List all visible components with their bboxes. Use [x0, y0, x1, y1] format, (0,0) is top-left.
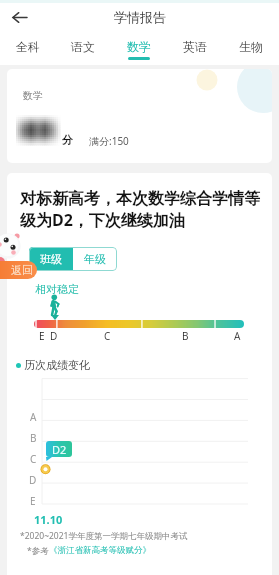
staticText: 分: [62, 133, 73, 147]
staticText: A: [30, 410, 37, 424]
staticText: 年级: [84, 252, 106, 266]
staticText: 相对稳定: [35, 282, 79, 296]
staticText: 对标新高考，本次数学综合学情等级为D2，下次继续加油: [20, 189, 267, 231]
button[interactable]: 生物: [223, 31, 279, 65]
staticText: 数学: [127, 39, 151, 54]
button[interactable]: 语文: [55, 31, 111, 65]
staticText: B: [182, 329, 189, 343]
staticText: 数学: [23, 89, 43, 102]
staticText: D: [29, 473, 37, 487]
staticText: *参考: [27, 545, 49, 557]
button[interactable]: Back: [8, 6, 30, 28]
button[interactable]: 班级: [29, 247, 73, 271]
button[interactable]: 全科: [0, 31, 55, 65]
staticText: D2: [52, 442, 67, 457]
staticText: 生物: [239, 39, 263, 54]
staticText: 11.10: [34, 512, 63, 527]
staticText: E: [39, 329, 45, 343]
staticText: B: [30, 431, 37, 445]
staticText: 语文: [71, 39, 95, 54]
button[interactable]: 返回: [0, 261, 37, 279]
staticText: C: [30, 452, 37, 466]
staticText: 《浙江省新高考等级赋分》: [49, 545, 151, 556]
staticText: 班级: [40, 252, 62, 266]
staticText: 返回: [11, 263, 33, 277]
staticText: 英语: [183, 39, 207, 54]
staticText: *2020~2021学年度第一学期七年级期中考试: [20, 530, 188, 542]
staticText: D: [50, 329, 58, 343]
button[interactable]: 数学: [111, 31, 167, 65]
button[interactable]: 年级: [73, 247, 117, 271]
staticText: C: [104, 329, 111, 343]
staticText: 历次成绩变化: [24, 358, 90, 372]
button[interactable]: 英语: [167, 31, 223, 65]
staticText: 满分:150: [89, 134, 129, 148]
staticText: E: [30, 494, 36, 508]
staticText: 学情报告: [114, 9, 166, 25]
staticText: A: [234, 329, 241, 343]
staticText: 全科: [16, 39, 40, 54]
